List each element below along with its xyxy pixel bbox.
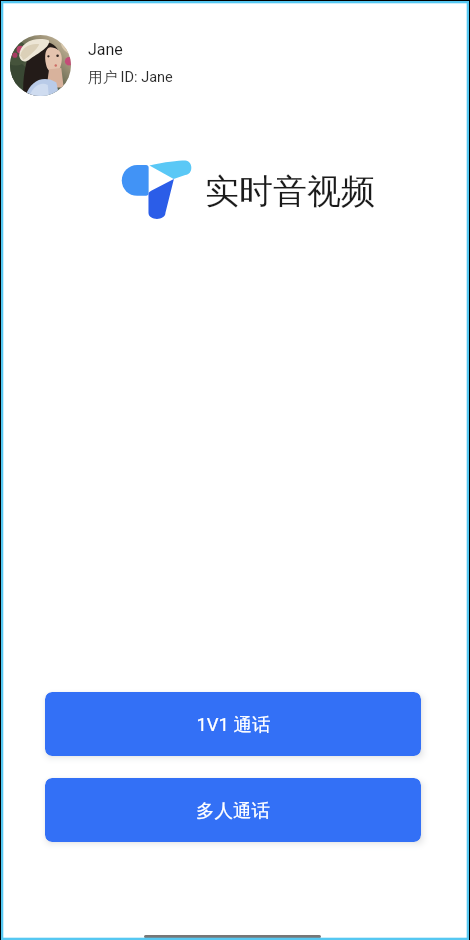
staticText: 实时音视频	[205, 170, 375, 213]
button[interactable]: 1V1 通话	[45, 692, 421, 756]
button[interactable]: 多人通话	[45, 778, 421, 842]
button[interactable]: Home	[144, 935, 321, 938]
staticText: 多人通话	[196, 799, 270, 822]
staticText: 用户 ID: Jane	[88, 68, 173, 86]
button[interactable]: 头像	[10, 35, 71, 96]
staticText: 1V1 通话	[196, 713, 271, 736]
staticText: Jane	[88, 40, 123, 59]
button[interactable]: 用户资料 Jane	[0, 0, 470, 106]
